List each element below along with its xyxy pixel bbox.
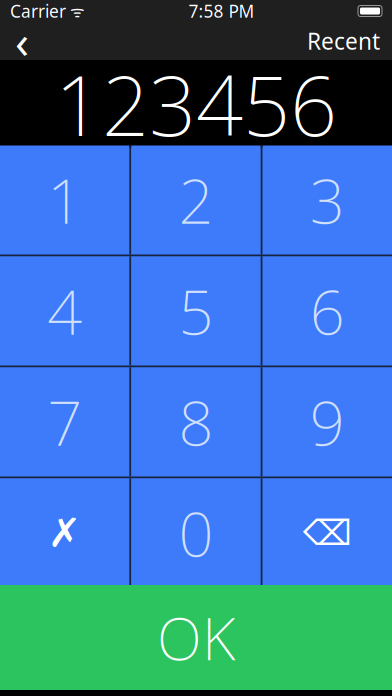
staticText: 9: [310, 381, 345, 463]
staticText: 8: [178, 381, 213, 463]
button[interactable]: 4: [0, 256, 129, 365]
staticText: 7: [47, 381, 82, 463]
button[interactable]: Delete: [263, 478, 392, 587]
staticText: 2: [178, 159, 213, 241]
staticText: 4: [47, 270, 82, 352]
button[interactable]: 3: [263, 145, 392, 254]
staticText: ‹: [15, 11, 29, 71]
staticText: 123456: [55, 49, 337, 159]
staticText: 5: [178, 270, 213, 352]
staticText: Recent: [307, 26, 380, 56]
button[interactable]: 2: [131, 145, 261, 254]
staticText: 6: [310, 270, 345, 352]
staticText: 3: [310, 159, 345, 241]
staticText: OK: [157, 598, 235, 676]
button[interactable]: OK: [0, 585, 392, 690]
staticText: Carrier: [10, 0, 66, 22]
staticText: 0: [178, 492, 213, 574]
button[interactable]: 9: [263, 367, 392, 476]
button[interactable]: Back: [0, 22, 44, 60]
staticText: ✗: [48, 510, 82, 556]
staticText: 1: [47, 159, 82, 241]
button[interactable]: 6: [263, 256, 392, 365]
button[interactable]: 8: [131, 367, 261, 476]
staticText: 7:58 PM: [188, 0, 254, 22]
button[interactable]: 7: [0, 367, 129, 476]
button[interactable]: Clear: [0, 478, 129, 587]
button[interactable]: 0: [131, 478, 261, 587]
button[interactable]: Recent: [295, 22, 392, 60]
staticText: ᯤ: [66, 0, 85, 22]
staticText: ⌫: [303, 513, 352, 553]
button[interactable]: 5: [131, 256, 261, 365]
button[interactable]: 1: [0, 145, 129, 254]
